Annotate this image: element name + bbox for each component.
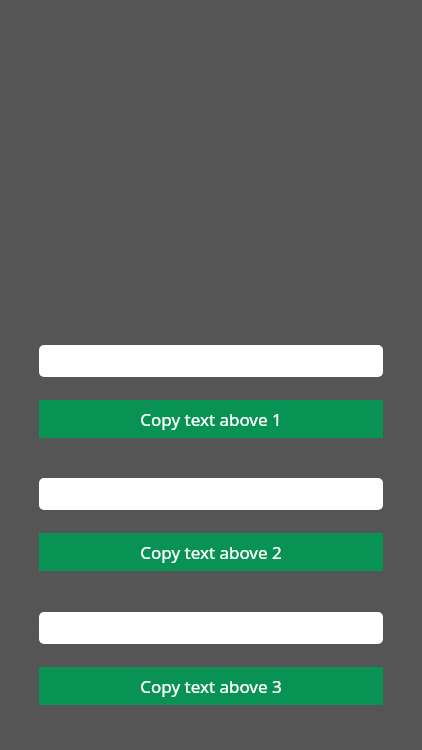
staticText: Copy text above 2 — [140, 541, 282, 564]
button[interactable]: Copy text above 3 — [39, 667, 383, 705]
button[interactable] — [39, 478, 383, 510]
staticText: Copy text above 3 — [140, 675, 282, 698]
button[interactable]: Copy text above 1 — [39, 400, 383, 438]
button[interactable] — [39, 612, 383, 644]
button[interactable] — [39, 345, 383, 377]
staticText: Copy text above 1 — [140, 408, 282, 431]
button[interactable]: Copy text above 2 — [39, 533, 383, 571]
